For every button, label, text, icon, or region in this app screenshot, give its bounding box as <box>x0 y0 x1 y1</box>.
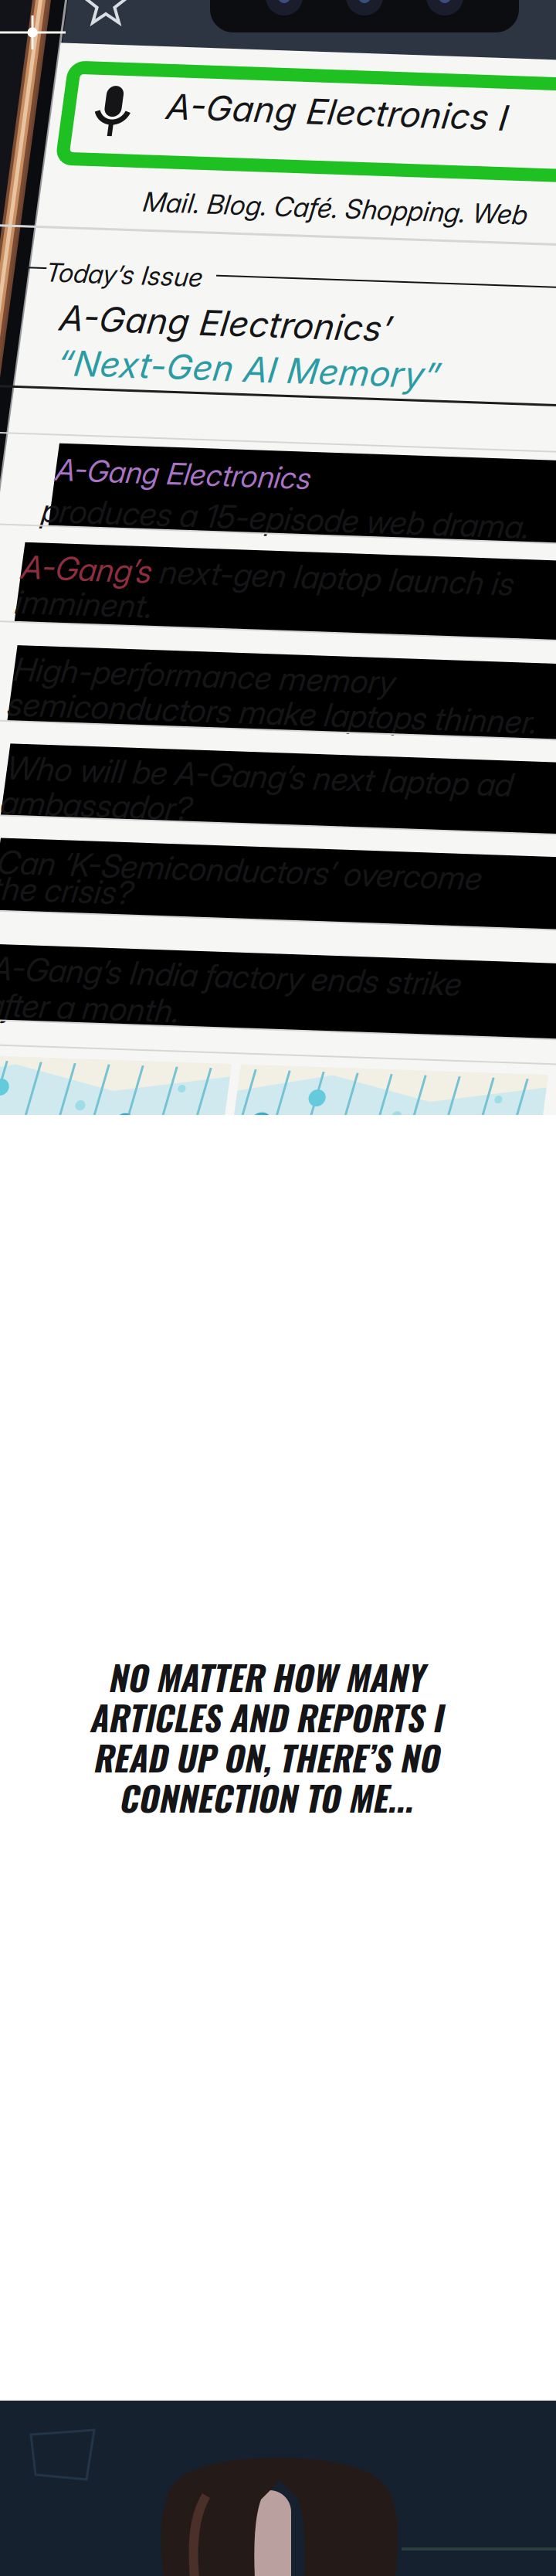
staticText: semiconductors make laptops thinner. <box>36 641 556 679</box>
staticText: A-Gang’s <box>32 504 162 542</box>
button[interactable]: Can ‘K-Semiconductors’ overcome <box>47 794 556 866</box>
staticText: ARTICLES AND REPORTS I <box>89 1692 442 1742</box>
staticText: ambassador? <box>42 739 234 777</box>
staticText: the crisis? <box>46 824 187 863</box>
staticText: after a month. <box>56 940 249 979</box>
staticText: A-Gang Electronics I <box>114 38 456 81</box>
staticText: produces a 15-episode web drama. <box>44 447 532 485</box>
button[interactable]: A-Gang’s <box>32 498 556 578</box>
staticText: imminent. <box>30 539 168 577</box>
staticText: A-Gang Electronics’ <box>36 252 369 295</box>
staticText: READ UP ON, THERE’S NO <box>93 1732 439 1782</box>
button[interactable]: A-Gang Electronics <box>53 399 556 481</box>
button[interactable]: Who will be A-Gang’s next laptop ad <box>44 699 556 771</box>
staticText: Who will be A-Gang’s next laptop ad <box>44 704 550 743</box>
staticText: Can ‘K-Semiconductors’ overcome <box>47 798 532 837</box>
staticText: Mail. Blog. Café. Shopping. Web <box>103 139 488 171</box>
staticText: CONNECTION TO ME... <box>119 1772 413 1822</box>
staticText: Today’s Issue <box>16 213 173 244</box>
staticText: A-Gang Electronics <box>53 407 308 443</box>
staticText: A-Gang’s India factory ends strike <box>56 904 526 943</box>
staticText: High-performance memory <box>38 606 419 644</box>
staticText: “Next-Gen AI Memory” <box>39 297 423 340</box>
button[interactable]: A-Gang Electronics’ <box>28 255 556 346</box>
button[interactable]: A-Gang’s India factory ends strike <box>56 899 556 975</box>
button[interactable]: A-Gang Electronics I <box>17 24 556 115</box>
staticText: NO MATTER HOW MANY <box>108 1651 424 1702</box>
button[interactable]: Mail. Blog. Café. Shopping. Web <box>93 131 499 179</box>
button[interactable]: High-performance memory <box>38 601 556 677</box>
staticText: next-gen laptop launch is <box>170 504 524 542</box>
